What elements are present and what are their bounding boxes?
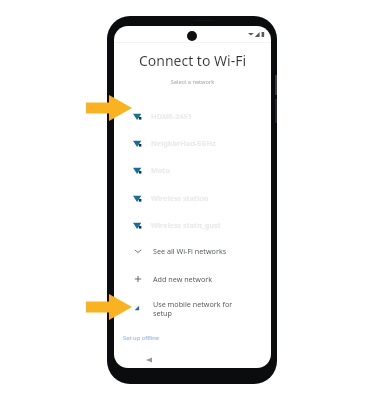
staticText: HOME-2451 [151,111,192,121]
button[interactable]: Set up offline [123,334,160,342]
staticText: Select a network [114,78,271,86]
staticText: Connect to Wi-Fi [114,51,271,70]
staticText: Use mobile network for setup [153,299,233,318]
button[interactable]: Wireless statn_gust [114,214,271,236]
staticText: Wireless station [151,193,209,203]
button[interactable]: HOME-2451 [114,105,271,127]
button[interactable]: NeighbrHod-5GHz [114,132,271,154]
button[interactable]: Use mobile network for setup [114,294,271,316]
staticText: NeighbrHod-5GHz [151,138,216,148]
staticText: Wireless statn_gust [151,220,221,230]
staticText: Set up offline [123,334,160,342]
staticText: Moto [151,165,170,175]
button[interactable]: Moto [114,159,271,181]
staticText: Add new network [153,274,233,284]
staticText: See all Wi-Fi networks [153,246,233,256]
button[interactable]: Wireless station [114,187,271,209]
button[interactable]: Add new network [114,269,271,291]
button[interactable]: See all Wi-Fi networks [114,241,271,263]
other: Back [146,357,152,363]
